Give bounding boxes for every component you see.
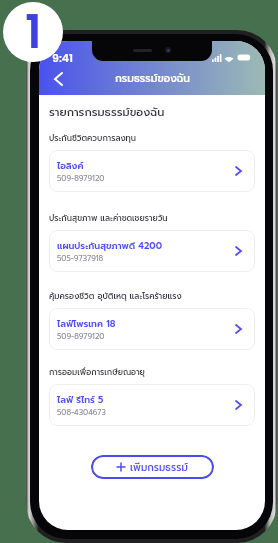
- staticText: ไอลิงค์: [57, 159, 84, 173]
- staticText: 509-8979120: [57, 331, 105, 342]
- staticText: เพิ่มกรมธรรม์: [130, 460, 188, 475]
- button[interactable]: ไลฟ์โพรเทค 18: [49, 308, 255, 350]
- staticText: ประกันชีวิตควบการลงทุน: [49, 132, 137, 144]
- staticText: ประกันสุขภาพ และค่าชดเชยรายวัน: [49, 212, 168, 224]
- staticText: 509-8979120: [57, 173, 105, 184]
- staticText: 505-9737918: [57, 253, 104, 264]
- button[interactable]: ไลฟ์ รีไทร์ 5: [49, 384, 255, 426]
- button[interactable]: เพิ่มกรมธรรม์: [91, 455, 214, 479]
- staticText: 1: [25, 2, 42, 60]
- staticText: คุ้มครองชีวิต อุบัติเหตุ และโรคร้ายแรง: [49, 290, 182, 302]
- staticText: การออมเพื่อการเกษียณอายุ: [49, 366, 145, 378]
- staticText: แผนประกันสุขภาพดี 4200: [57, 239, 162, 253]
- button[interactable]: ไอลิงค์: [49, 150, 255, 192]
- button[interactable]: Back: [46, 67, 70, 91]
- staticText: 508-4304673: [57, 407, 106, 418]
- staticText: รายการกรมธรรม์ของฉัน: [49, 104, 165, 121]
- button[interactable]: แผนประกันสุขภาพดี 4200: [49, 230, 255, 272]
- staticText: ไลฟ์ รีไทร์ 5: [57, 393, 104, 407]
- staticText: 9:41: [52, 50, 74, 65]
- staticText: กรมธรรม์ของฉัน: [115, 71, 190, 87]
- staticText: ไลฟ์โพรเทค 18: [57, 317, 116, 331]
